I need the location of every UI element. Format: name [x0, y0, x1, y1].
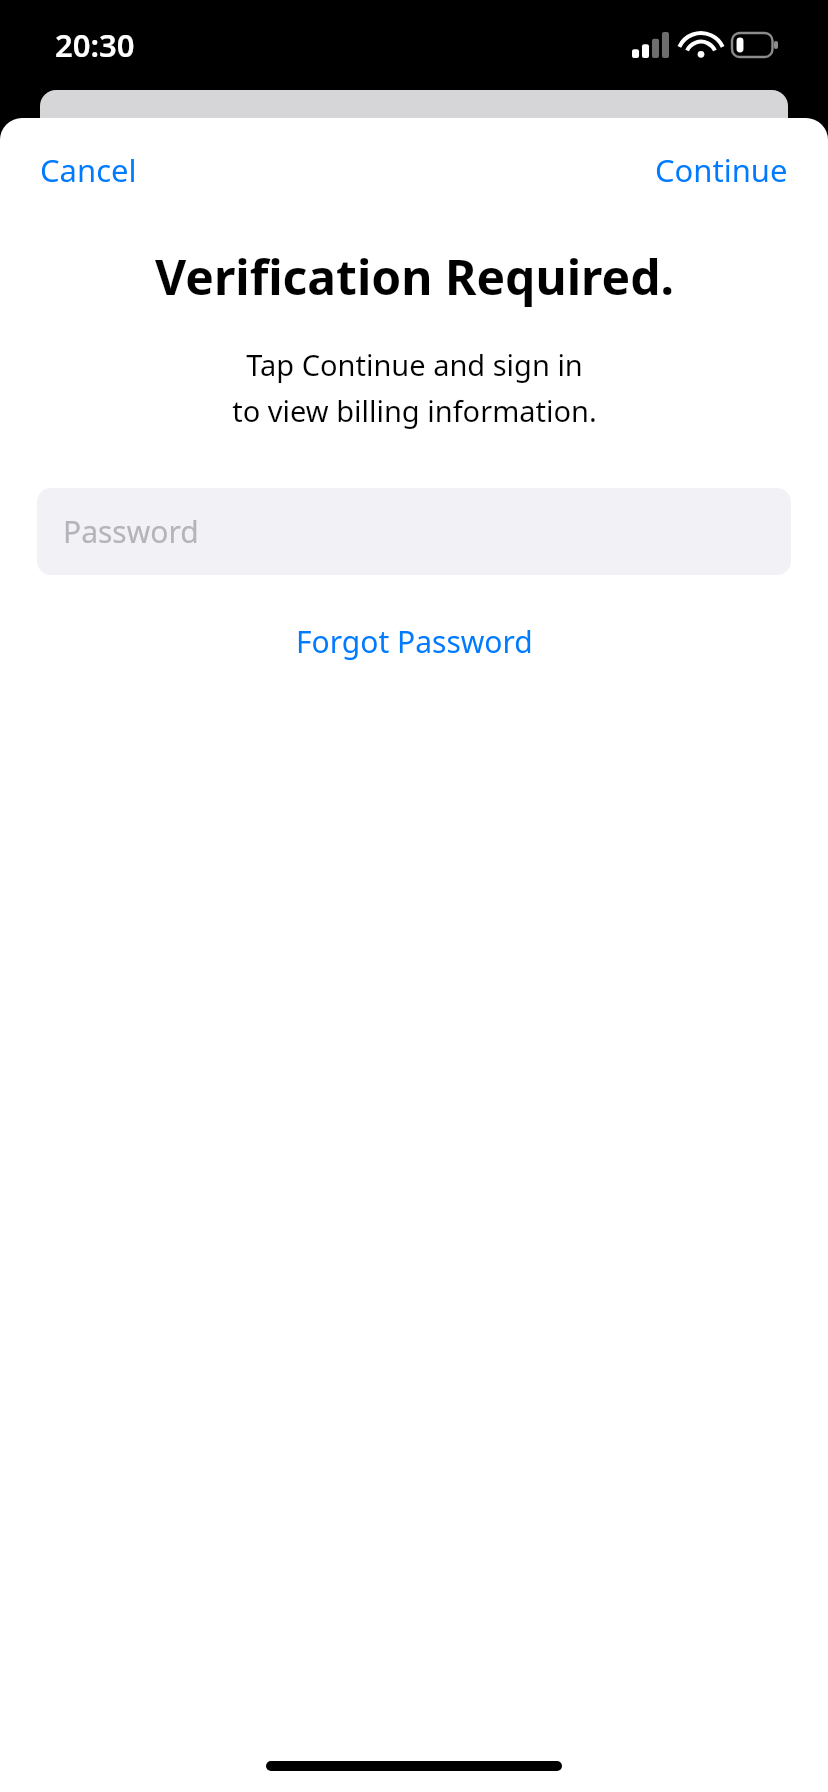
staticText: Verification Required.	[155, 244, 674, 309]
button[interactable]: Password	[37, 488, 791, 575]
button[interactable]: Continue	[639, 139, 828, 201]
staticText: Forgot Password	[296, 621, 533, 662]
staticText: Cancel	[40, 149, 137, 191]
staticText: 20:30	[55, 24, 135, 66]
staticText: Password	[63, 511, 199, 552]
button[interactable]: Forgot Password	[272, 613, 557, 670]
button[interactable]: Cancel	[0, 139, 153, 201]
staticText: Tap Continue and sign in to view billing…	[232, 345, 597, 431]
staticText: Continue	[655, 149, 788, 191]
